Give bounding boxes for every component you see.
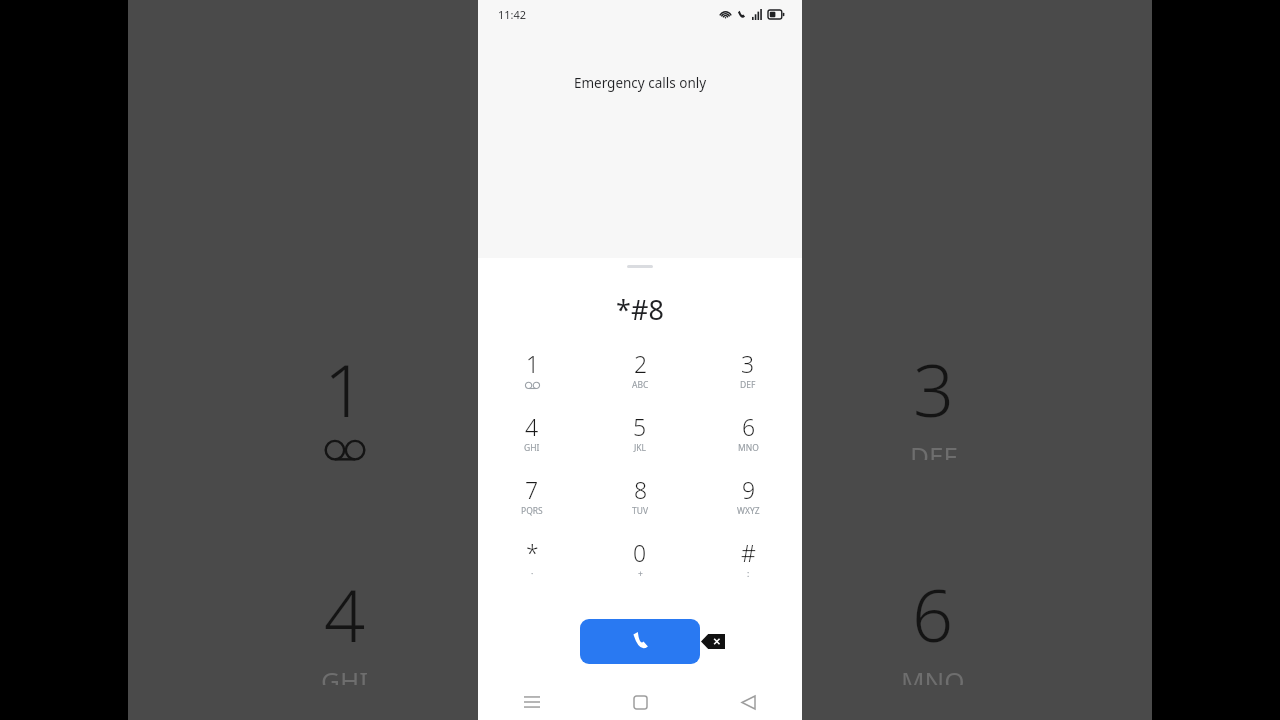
button[interactable]: Call [580,619,700,664]
staticText: TUV [632,505,649,517]
button[interactable]: 7 [478,474,586,537]
button[interactable]: # [694,537,802,600]
button[interactable]: 3 [694,348,802,411]
staticText: 9 [742,474,756,505]
staticText: *#8 [478,291,802,328]
button[interactable]: 5 [586,411,694,474]
button[interactable]: 1 [478,348,586,411]
button[interactable]: Back [694,684,802,720]
staticText: 1 [324,340,366,438]
staticText: MNO [901,663,965,685]
staticText: DEF [740,379,756,391]
staticText: 11:42 [498,7,527,22]
staticText: MNO [738,442,759,454]
button[interactable]: 8 [586,474,694,537]
staticText: 1 [526,348,540,379]
staticText: * [526,537,539,568]
staticText: DEF [910,438,957,460]
staticText: Emergency calls only [478,74,802,92]
staticText: 0 [633,537,647,568]
staticText: 4 [525,411,539,442]
button[interactable]: Menu [478,684,586,720]
staticText: PQRS [521,505,543,517]
staticText: 8 [634,474,648,505]
button[interactable]: 2 [586,348,694,411]
button[interactable]: * [478,537,586,600]
staticText: GHI [524,442,540,454]
staticText: : [747,568,750,580]
staticText: # [741,537,756,568]
staticText: ABC [632,379,649,391]
button[interactable]: 4 [478,411,586,474]
staticText: 3 [913,340,955,438]
staticText: JKL [634,442,647,454]
staticText: WXYZ [737,505,760,517]
staticText: 3 [741,348,755,379]
staticText: 4 [324,565,366,663]
button[interactable]: Home [586,684,694,720]
staticText: 7 [525,474,539,505]
button[interactable]: Delete [696,629,730,653]
button[interactable]: 6 [694,411,802,474]
staticText: GHI [321,663,369,685]
button[interactable]: 9 [694,474,802,537]
staticText: 5 [633,411,647,442]
staticText: · [531,568,534,580]
staticText: 2 [634,348,648,379]
staticText: + [638,568,643,580]
staticText: 6 [912,565,954,663]
button[interactable]: 0 [586,537,694,600]
staticText: 6 [742,411,756,442]
